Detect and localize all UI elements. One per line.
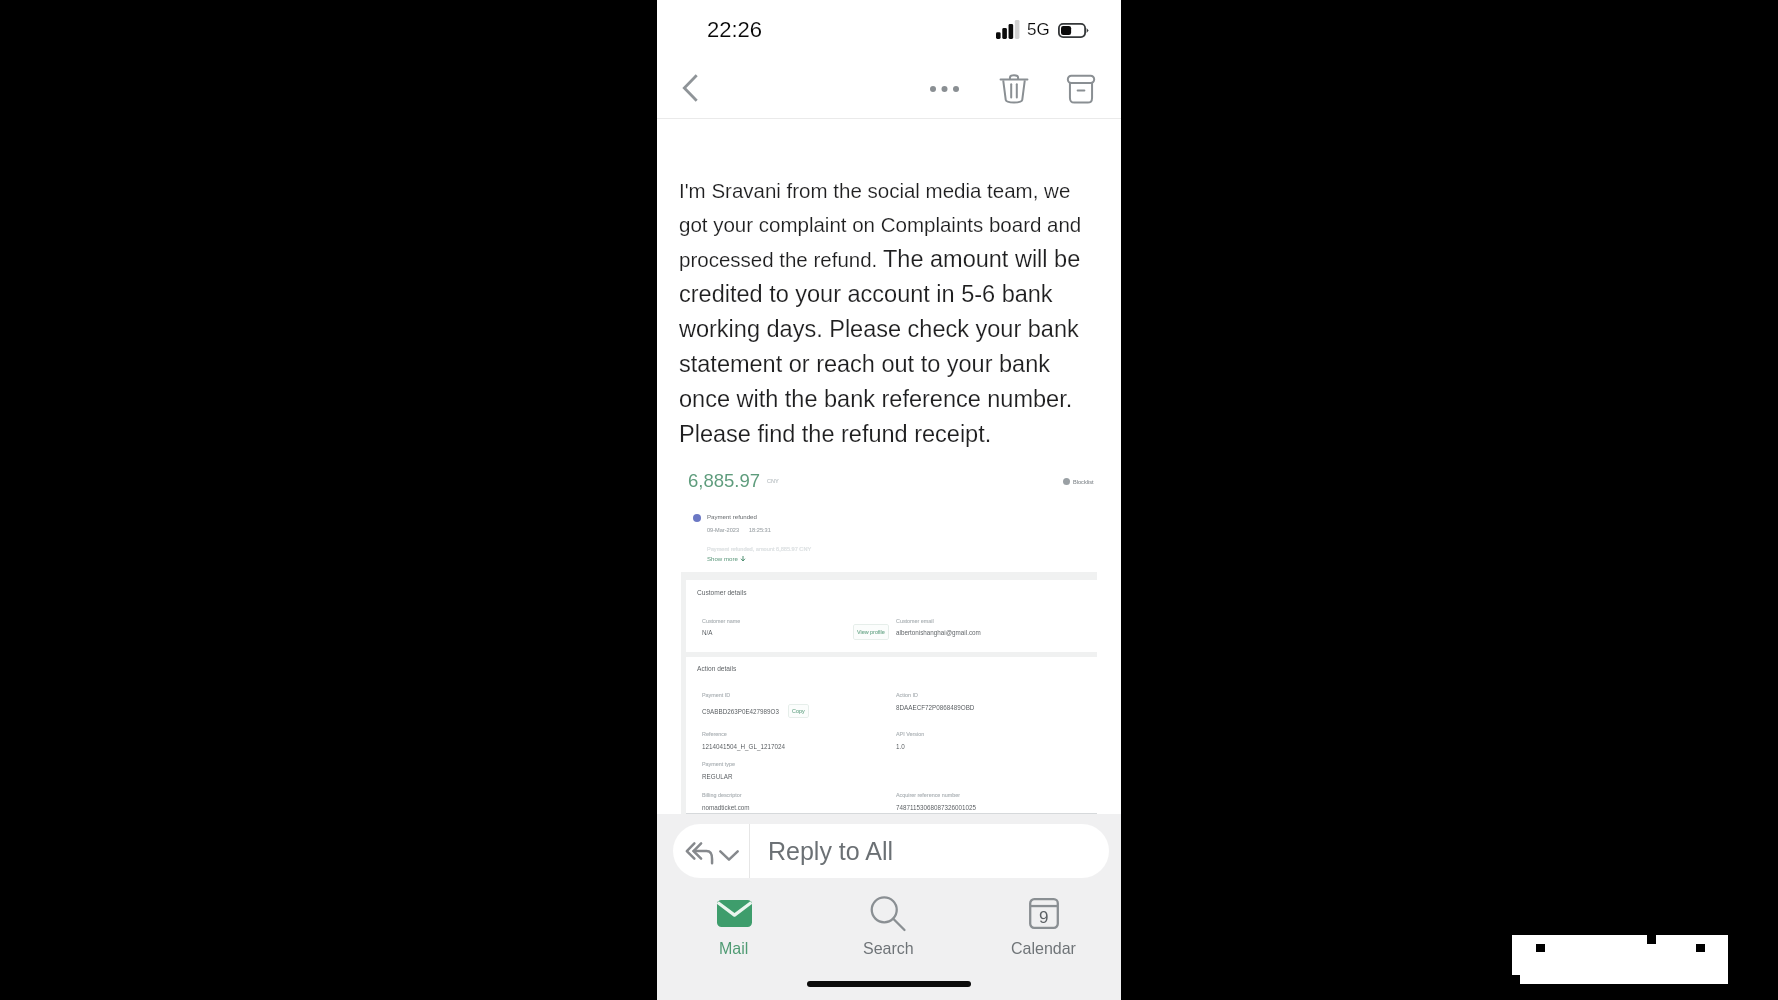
staticText: I'm Sravani from the social media team, …	[679, 179, 1087, 447]
button[interactable]: Mail	[657, 893, 811, 963]
staticText: 74871153068087326001025	[896, 804, 977, 811]
staticText: API Version	[896, 731, 925, 737]
staticText: Copy	[792, 708, 805, 714]
staticText: C9ABBD263P0E427989O3	[702, 708, 780, 715]
staticText: 5G	[1027, 20, 1050, 39]
staticText: Reference	[702, 731, 727, 737]
staticText: Customer details	[697, 589, 747, 596]
button[interactable]: Reply to All	[750, 824, 1109, 878]
staticText: Payment refunded	[707, 513, 757, 520]
staticText: REGULAR	[702, 773, 733, 780]
staticText: Search	[863, 940, 914, 958]
button[interactable]: 9	[966, 893, 1121, 963]
staticText: Customer name	[702, 618, 741, 624]
staticText: Mail	[719, 940, 749, 958]
staticText: 22:26	[707, 17, 763, 42]
staticText: Acquirer reference number	[896, 792, 961, 798]
staticText: Action details	[697, 665, 737, 672]
button[interactable]: Delete	[987, 62, 1040, 115]
button[interactable]: Back	[664, 62, 716, 114]
button[interactable]: Archive	[1054, 62, 1107, 115]
staticText: 09-Mar-2023	[707, 527, 740, 533]
button[interactable]: Reply options	[673, 824, 749, 878]
staticText: Billing descriptor	[702, 792, 742, 798]
staticText: CNY	[767, 478, 779, 484]
staticText: 6,885.97	[688, 470, 761, 491]
staticText: Blocklist	[1073, 479, 1094, 485]
staticText: 8DAAECF72P0868489OBD	[896, 704, 975, 711]
staticText: Action ID	[896, 692, 918, 698]
button[interactable]: View profile	[853, 624, 889, 640]
staticText: Show more	[707, 555, 738, 562]
staticText: 9	[1039, 908, 1049, 927]
button[interactable]: More options	[918, 62, 971, 115]
button[interactable]: Search	[811, 893, 966, 963]
staticText: Payment ID	[702, 692, 731, 698]
staticText: Reply to All	[768, 837, 894, 865]
staticText: N/A	[702, 629, 713, 636]
staticText: 18:25:31	[749, 527, 771, 533]
staticText: 1214041504_H_GL_1217024	[702, 743, 785, 750]
staticText: Payment type	[702, 761, 735, 767]
staticText: albertonishanghai@gmail.com	[896, 629, 981, 636]
staticText: nomadticket.com	[702, 804, 750, 811]
staticText: View profile	[857, 629, 885, 635]
staticText: Customer email	[896, 618, 934, 624]
staticText: Payment refunded, amount 6,885.97 CNY	[707, 546, 812, 552]
staticText: Calendar	[1011, 940, 1076, 958]
staticText: 1.0	[896, 743, 905, 750]
button[interactable]: Copy	[788, 704, 809, 718]
